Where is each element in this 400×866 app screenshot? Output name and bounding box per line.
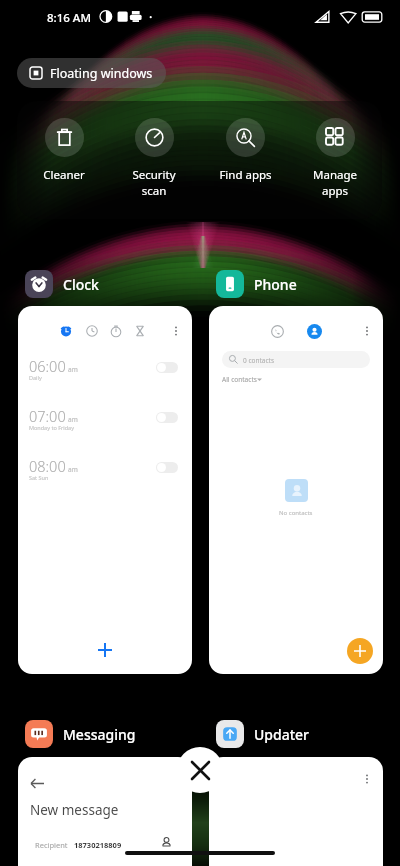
button[interactable]: Floating windows (17, 58, 166, 88)
staticText: Sat Sun (29, 474, 49, 481)
staticText: Updater (254, 725, 310, 744)
staticText: No contacts (279, 509, 313, 517)
staticText: Floating windows (50, 65, 153, 82)
staticText: Messaging (63, 725, 136, 744)
staticText: Daily (29, 374, 42, 381)
button[interactable]: Updater (216, 720, 310, 748)
staticText: Monday to Friday (29, 424, 74, 431)
button[interactable]: 06:00 (18, 351, 192, 399)
button[interactable]: Close all (177, 747, 223, 793)
staticText: Recipient (35, 840, 68, 850)
button[interactable] (156, 462, 178, 473)
staticText: 8:16 AM (47, 10, 91, 26)
staticText: am (68, 415, 78, 424)
staticText: Clock (63, 275, 99, 294)
button[interactable] (209, 757, 383, 866)
staticText: 08:00 (29, 456, 66, 476)
button[interactable]: Phone (216, 270, 297, 298)
button[interactable]: Manage apps (291, 101, 379, 198)
button[interactable]: Find apps (201, 101, 289, 183)
button[interactable]: 06:00 (18, 306, 192, 674)
staticText: am (68, 465, 78, 474)
button[interactable]: 0 contacts (222, 351, 370, 368)
staticText: 06:00 (29, 356, 66, 376)
staticText: Manage apps (313, 167, 357, 198)
staticText: 07:00 (29, 406, 66, 426)
staticText: Phone (254, 275, 297, 294)
button[interactable]: Add contact (347, 638, 373, 664)
button[interactable] (156, 362, 178, 373)
button[interactable]: 08:00 (18, 451, 192, 499)
staticText: All contacts (222, 375, 257, 384)
button[interactable]: 07:00 (18, 401, 192, 449)
button[interactable] (307, 324, 322, 339)
button[interactable]: Cleaner (20, 101, 108, 183)
staticText: 0 contacts (243, 356, 275, 365)
button[interactable]: 0 contacts (209, 306, 383, 674)
button[interactable]: New message (18, 757, 192, 866)
staticText: Security scan (132, 167, 176, 198)
staticText: 18730218809 (74, 840, 122, 850)
staticText: Find apps (219, 167, 272, 183)
staticText: am (68, 365, 78, 374)
button[interactable]: Security scan (110, 101, 198, 198)
button[interactable]: Clock (25, 270, 99, 298)
staticText: New message (30, 801, 119, 819)
button[interactable] (156, 412, 178, 423)
button[interactable]: Messaging (25, 720, 136, 748)
staticText: Cleaner (43, 167, 85, 183)
